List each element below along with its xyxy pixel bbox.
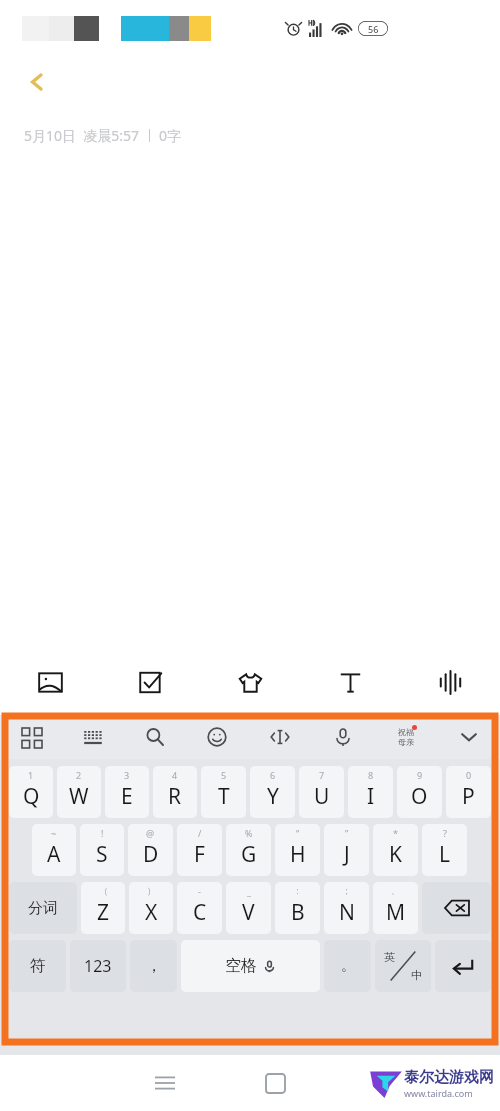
button[interactable]: 分词 <box>9 882 77 934</box>
staticText: 0字 <box>159 126 182 145</box>
button[interactable]: 8 <box>348 766 393 818</box>
staticText: 3 <box>124 769 130 781</box>
button[interactable]: Back <box>14 59 60 105</box>
staticText: K <box>389 840 402 869</box>
button[interactable]: 9 <box>397 766 442 818</box>
button[interactable]: ） <box>129 882 173 934</box>
button[interactable]: 3 <box>105 766 149 818</box>
staticText: ! <box>101 827 104 839</box>
button[interactable]: 4 <box>153 766 197 818</box>
button[interactable]: Backspace <box>422 882 491 934</box>
button[interactable]: - <box>177 882 222 934</box>
staticText: G <box>241 840 257 869</box>
staticText: 泰尔达游戏网 <box>404 1068 494 1087</box>
button[interactable]: Emoji <box>186 715 248 759</box>
button[interactable]: Home <box>220 1055 330 1111</box>
button[interactable]: Apps <box>0 715 62 759</box>
staticText: F <box>194 840 205 869</box>
staticText: ， <box>146 956 162 976</box>
staticText: C <box>193 898 207 927</box>
button[interactable]: / <box>177 824 222 876</box>
button[interactable]: Keyboard layout <box>62 715 124 759</box>
button[interactable]: Search <box>124 715 186 759</box>
staticText: % <box>245 827 253 839</box>
button[interactable]: Switch language <box>375 940 431 992</box>
staticText: 英 <box>384 950 395 964</box>
staticText: * <box>393 827 398 839</box>
button[interactable]: Voice <box>400 649 500 715</box>
button[interactable]: Checklist <box>100 649 200 715</box>
staticText: R <box>168 782 182 811</box>
staticText: M <box>386 898 406 927</box>
staticText: O <box>411 782 428 811</box>
staticText: T <box>218 782 230 811</box>
staticText: Q <box>23 782 40 811</box>
staticText: N <box>339 898 355 927</box>
button[interactable]: ” <box>324 824 369 876</box>
button[interactable]: Hide keyboard <box>437 715 500 759</box>
staticText: - <box>198 885 201 897</box>
button[interactable]: ： <box>275 882 320 934</box>
staticText: 空格 <box>225 956 257 976</box>
staticText: 。 <box>341 957 355 975</box>
staticText: ” <box>345 827 349 839</box>
button[interactable]: 1 <box>9 766 53 818</box>
button[interactable]: 2 <box>57 766 101 818</box>
button[interactable]: “ <box>275 824 320 876</box>
button[interactable]: 6 <box>250 766 295 818</box>
button[interactable]: （ <box>81 882 125 934</box>
button[interactable]: ~ <box>32 824 76 876</box>
staticText: B <box>291 898 305 927</box>
staticText: I <box>367 782 375 811</box>
staticText: @ <box>146 827 155 839</box>
staticText: J <box>344 840 350 869</box>
button[interactable]: Text style <box>300 649 400 715</box>
button[interactable]: 、 <box>373 882 418 934</box>
staticText: 分词 <box>28 899 58 918</box>
button[interactable]: Greetings <box>374 715 437 759</box>
staticText: 4 <box>172 769 178 781</box>
staticText: “ <box>296 827 300 839</box>
button[interactable]: 空格 <box>181 940 320 992</box>
button[interactable]: @ <box>128 824 173 876</box>
staticText: U <box>314 782 330 811</box>
button[interactable]: Cursor <box>248 715 311 759</box>
staticText: ： <box>293 885 302 896</box>
button[interactable]: Back <box>330 1055 440 1111</box>
staticText: 6 <box>270 769 276 781</box>
button[interactable]: * <box>373 824 418 876</box>
staticText: P <box>462 782 475 811</box>
button[interactable]: 。 <box>324 940 371 992</box>
button[interactable]: Theme <box>200 649 300 715</box>
staticText: V <box>242 898 255 927</box>
staticText: S <box>96 840 108 869</box>
staticText: ） <box>147 885 156 896</box>
button[interactable]: Voice input <box>311 715 374 759</box>
button[interactable]: ! <box>80 824 124 876</box>
staticText: ~ <box>51 827 57 839</box>
staticText: Y <box>267 782 279 811</box>
staticText: E <box>121 782 133 811</box>
staticText: 56 <box>368 23 379 35</box>
staticText: Z <box>97 898 110 927</box>
button[interactable]: ， <box>130 940 177 992</box>
button[interactable]: 123 <box>70 940 126 992</box>
staticText: 、 <box>391 885 400 896</box>
button[interactable]: ； <box>324 882 369 934</box>
button[interactable]: 7 <box>299 766 344 818</box>
staticText: 5 <box>221 769 227 781</box>
staticText: H <box>290 840 306 869</box>
button[interactable]: 0 <box>446 766 491 818</box>
staticText: 0 <box>466 769 472 781</box>
button[interactable]: Recents <box>110 1055 220 1111</box>
staticText: 2 <box>76 769 82 781</box>
button[interactable]: 5 <box>201 766 246 818</box>
button[interactable]: 符 <box>9 940 66 992</box>
button[interactable]: Insert image <box>0 649 100 715</box>
staticText: / <box>198 827 202 839</box>
button[interactable]: Enter <box>435 940 491 992</box>
staticText: 7 <box>319 769 325 781</box>
button[interactable]: ? <box>422 824 467 876</box>
button[interactable]: _ <box>226 882 271 934</box>
button[interactable]: % <box>226 824 271 876</box>
